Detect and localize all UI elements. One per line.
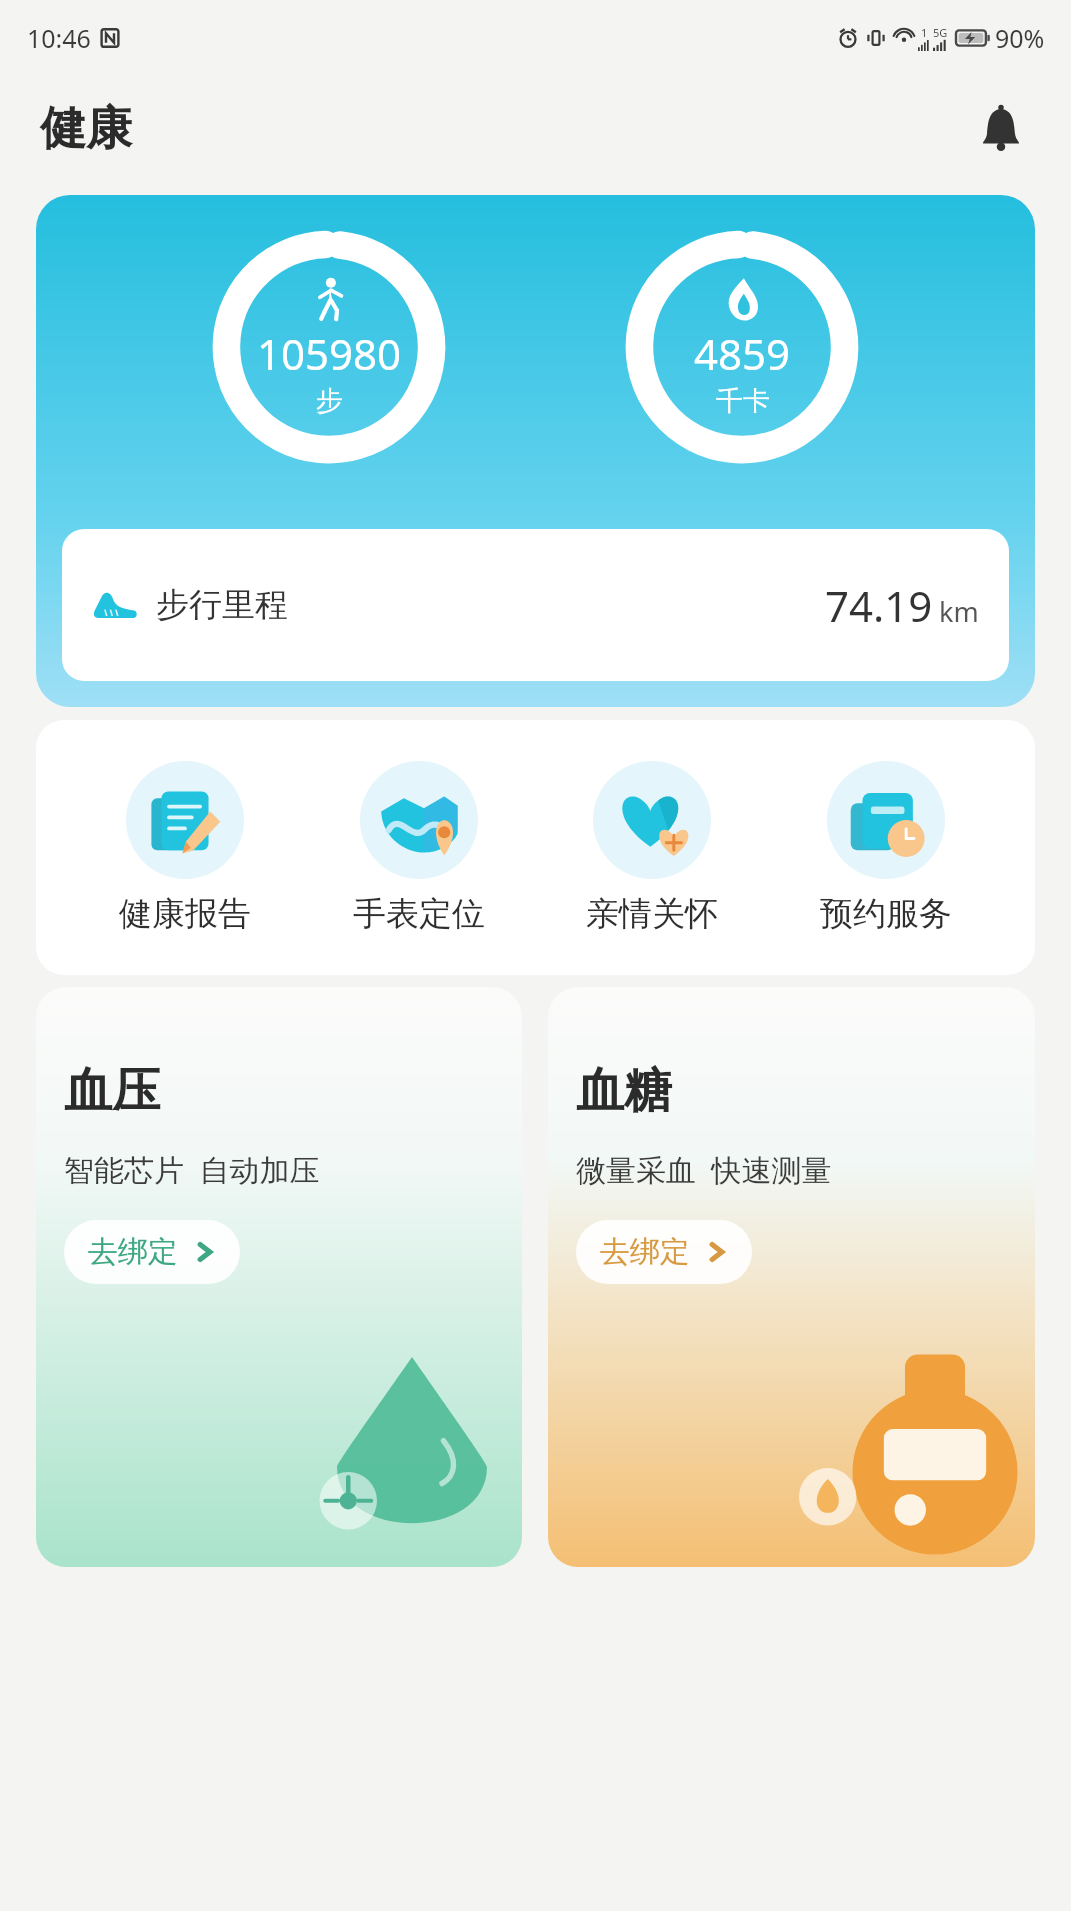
- staticText: 4859: [694, 325, 791, 382]
- staticText: 健康报告: [119, 893, 251, 935]
- staticText: 血压: [64, 1061, 160, 1121]
- staticText: 去绑定: [600, 1233, 690, 1271]
- staticText: 血糖: [576, 1061, 672, 1121]
- staticText: 亲情关怀: [586, 893, 718, 935]
- button[interactable]: 血压: [36, 987, 522, 1567]
- button[interactable]: 步行里程: [62, 529, 1009, 681]
- staticText: 预约服务: [820, 893, 952, 935]
- staticText: 步: [316, 384, 343, 418]
- staticText: 90%: [995, 21, 1045, 55]
- button[interactable]: 105980: [209, 227, 449, 467]
- staticText: 千卡: [716, 384, 770, 418]
- button[interactable]: 去绑定: [64, 1220, 240, 1284]
- staticText: 步行里程: [156, 584, 288, 626]
- staticText: 健康: [40, 100, 132, 158]
- button[interactable]: 健康报告: [90, 757, 280, 939]
- staticText: 去绑定: [88, 1233, 178, 1271]
- button[interactable]: 血糖: [548, 987, 1035, 1567]
- button[interactable]: Notifications: [971, 99, 1031, 159]
- staticText: 105980: [257, 325, 402, 382]
- button[interactable]: 预约服务: [791, 757, 981, 939]
- staticText: 10:46: [27, 21, 91, 55]
- staticText: 手表定位: [353, 893, 485, 935]
- button[interactable]: 105980: [36, 195, 1035, 707]
- staticText: 微量采血 快速测量: [576, 1149, 832, 1190]
- button[interactable]: 亲情关怀: [557, 757, 747, 939]
- staticText: 智能芯片 自动加压: [64, 1149, 320, 1190]
- staticText: 74.19: [825, 577, 933, 634]
- staticText: km: [939, 593, 979, 630]
- staticText: 5G: [933, 25, 948, 40]
- button[interactable]: 手表定位: [324, 757, 514, 939]
- button[interactable]: 去绑定: [576, 1220, 752, 1284]
- staticText: 1: [921, 25, 928, 40]
- button[interactable]: 4859: [622, 227, 862, 467]
